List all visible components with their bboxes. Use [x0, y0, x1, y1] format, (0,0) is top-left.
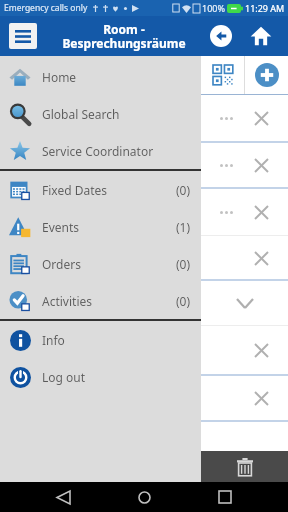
staticText: Log out	[42, 369, 86, 385]
staticText: (0)	[176, 293, 191, 309]
button[interactable]	[201, 189, 288, 235]
button[interactable]: Log out	[0, 358, 201, 395]
button[interactable]: Menu	[9, 23, 37, 49]
button[interactable]: Expand	[201, 281, 288, 325]
button[interactable]: Back	[45, 482, 81, 512]
staticText: Service Coordinator	[42, 143, 154, 159]
button[interactable]: Activities	[0, 282, 201, 319]
staticText: Fixed Dates	[42, 182, 108, 198]
staticText: 100%	[202, 2, 225, 14]
button[interactable]	[201, 376, 288, 420]
button[interactable]: Fixed Dates	[0, 171, 201, 208]
button[interactable]: Events	[0, 208, 201, 245]
button[interactable]: Home	[246, 21, 276, 51]
staticText: (1)	[176, 219, 191, 235]
button[interactable]: Recents	[207, 482, 243, 512]
staticText: Room - Besprechungsräume	[62, 21, 186, 52]
staticText: (0)	[176, 256, 191, 272]
button[interactable]: Service Coordinator	[0, 132, 201, 169]
button[interactable]: Back	[206, 21, 236, 51]
button[interactable]: Info	[0, 321, 201, 358]
staticText: (0)	[176, 182, 191, 198]
button[interactable]	[201, 236, 288, 279]
staticText: Activities	[42, 293, 92, 309]
button[interactable]: Add	[245, 56, 288, 94]
staticText: Info	[42, 332, 65, 348]
staticText: Orders	[42, 256, 81, 272]
staticText: Home	[42, 69, 77, 85]
button[interactable]: Global Search	[0, 95, 201, 132]
staticText: Emergency calls only	[4, 2, 88, 14]
button[interactable]: Delete	[201, 451, 288, 482]
button[interactable]	[201, 326, 288, 374]
staticText: 11:29 AM	[245, 2, 285, 14]
staticText: Events	[42, 219, 80, 235]
button[interactable]: Home	[0, 58, 201, 95]
button[interactable]: Scan QR code	[201, 56, 244, 94]
staticText: Global Search	[42, 106, 120, 122]
button[interactable]	[201, 143, 288, 187]
button[interactable]: Home	[126, 482, 162, 512]
button[interactable]: Orders	[0, 245, 201, 282]
button[interactable]	[201, 95, 288, 141]
